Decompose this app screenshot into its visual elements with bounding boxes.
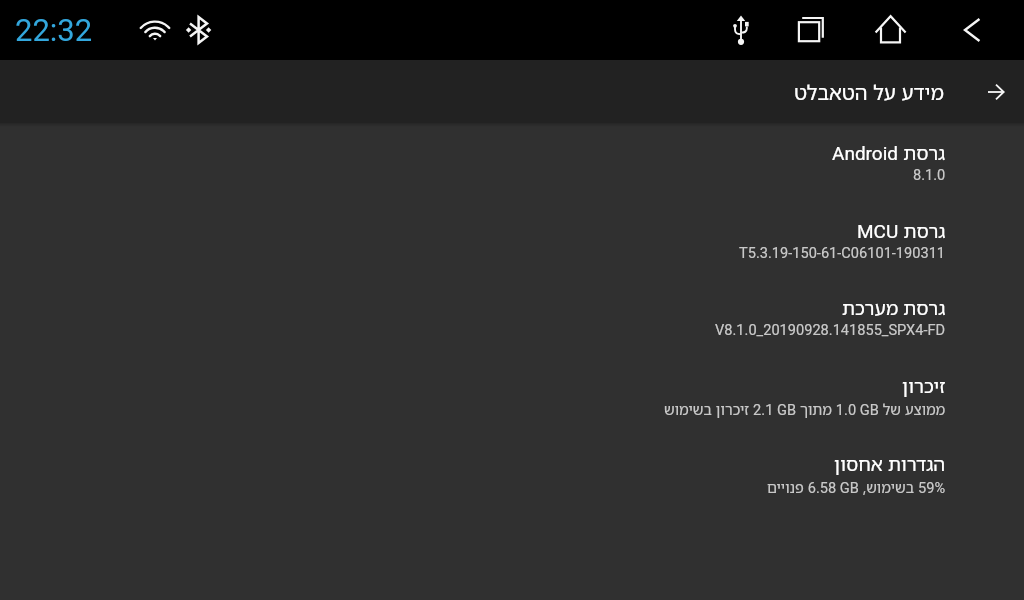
button[interactable]: גרסת ⁦Android⁩ <box>0 132 1024 210</box>
button[interactable]: USB connection <box>726 14 756 46</box>
staticText: ⁦V8.1.0_20190928.141855_SPX4-FD⁩ <box>715 321 946 338</box>
button[interactable]: Home <box>874 13 907 45</box>
staticText: זיכרון <box>902 373 946 399</box>
other: Wi-Fi signal <box>141 17 169 43</box>
staticText: מידע על הטאבלט <box>794 78 944 106</box>
button[interactable]: זיכרון <box>0 365 1024 443</box>
staticText: גרסת ⁦MCU⁩ <box>857 218 946 244</box>
staticText: גרסת ⁦Android⁩ <box>832 140 946 166</box>
staticText: ממוצע של ⁦1.0 GB⁩ מתוך ⁦2.1 GB⁩ זיכרון ב… <box>664 399 946 419</box>
button[interactable]: הגדרות אחסון <box>0 443 1024 521</box>
staticText: הגדרות אחסון <box>834 451 946 477</box>
staticText: ⁦T5.3.19-150-61-C06101-190311⁩ <box>739 244 946 261</box>
staticText: ⁦59%⁩ בשימוש, ⁦6.58 GB⁩ פנויים <box>767 477 946 497</box>
button[interactable]: גרסת מערכת <box>0 287 1024 365</box>
button[interactable]: Back <box>955 14 987 46</box>
button[interactable]: Navigate back <box>974 70 1018 114</box>
other: Bluetooth connected <box>186 16 211 44</box>
button[interactable]: Recent apps <box>794 14 826 46</box>
staticText: 22:32 <box>15 12 93 48</box>
staticText: גרסת מערכת <box>842 295 946 321</box>
staticText: ⁦8.1.0⁩ <box>913 166 946 183</box>
button[interactable]: גרסת ⁦MCU⁩ <box>0 210 1024 288</box>
